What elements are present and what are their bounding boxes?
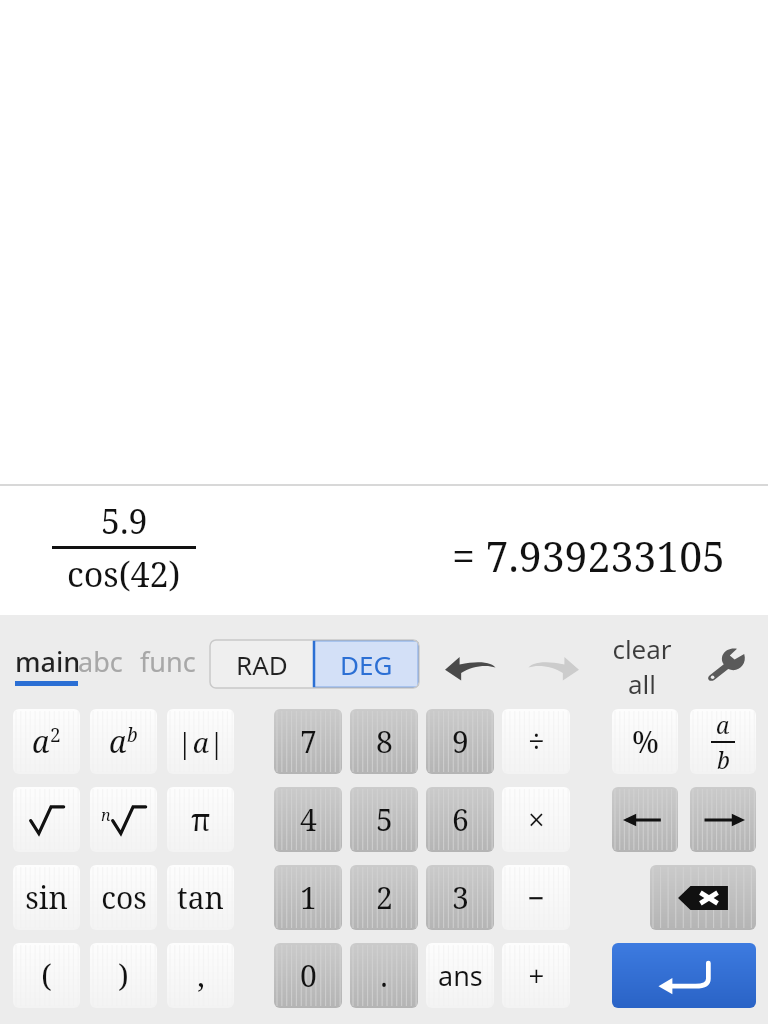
staticText: 5 <box>376 799 393 840</box>
staticText: % <box>632 721 659 762</box>
staticText: |a| <box>177 723 225 761</box>
staticText: = 7.939233105 <box>452 528 726 584</box>
button[interactable]: % <box>612 709 678 774</box>
button[interactable]: π <box>167 787 234 852</box>
button[interactable]: 5 <box>350 787 418 852</box>
staticText: a <box>109 721 127 762</box>
button[interactable]: tan <box>167 865 234 930</box>
button[interactable]: . <box>350 943 418 1008</box>
button[interactable] <box>13 787 80 852</box>
button[interactable]: 3 <box>426 865 494 930</box>
button[interactable]: , <box>167 943 234 1008</box>
staticText: DEG <box>340 647 393 682</box>
staticText: main <box>15 643 81 680</box>
button[interactable]: clear all <box>596 631 688 697</box>
staticText: , <box>197 955 205 996</box>
button[interactable]: 0 <box>274 943 342 1008</box>
staticText: tan <box>177 877 224 918</box>
button[interactable]: DEG <box>314 640 419 688</box>
staticText: n <box>101 804 111 826</box>
staticText: RAD <box>236 647 288 682</box>
button[interactable]: sin <box>13 865 80 930</box>
staticText: cos <box>101 877 147 918</box>
button[interactable]: + <box>502 943 570 1008</box>
staticText: sin <box>25 877 68 918</box>
button[interactable]: 2 <box>350 865 418 930</box>
staticText: 8 <box>376 721 393 762</box>
button[interactable]: × <box>502 787 570 852</box>
staticText: . <box>380 955 388 996</box>
button[interactable]: |a| <box>167 709 234 774</box>
staticText: 6 <box>452 799 469 840</box>
staticText: ) <box>118 955 129 996</box>
button[interactable]: 4 <box>274 787 342 852</box>
button[interactable]: main <box>15 643 81 680</box>
staticText: ans <box>438 957 483 994</box>
staticText: func <box>140 643 196 680</box>
button[interactable]: RAD <box>210 640 314 688</box>
staticText: − <box>527 877 545 918</box>
button[interactable]: Undo <box>438 645 502 685</box>
staticText: + <box>528 955 545 996</box>
staticText: ÷ <box>528 721 545 762</box>
staticText: π <box>191 799 211 840</box>
button[interactable]: Enter <box>612 943 756 1008</box>
button[interactable]: 7 <box>274 709 342 774</box>
staticText: b <box>717 744 730 774</box>
button[interactable]: a <box>13 709 80 774</box>
button[interactable]: ÷ <box>502 709 570 774</box>
staticText: a <box>32 721 50 762</box>
button[interactable]: 9 <box>426 709 494 774</box>
button[interactable]: Settings <box>700 643 750 687</box>
button[interactable]: ans <box>426 943 494 1008</box>
button[interactable]: n <box>90 787 157 852</box>
button[interactable]: Move right <box>690 787 756 852</box>
staticText: ( <box>41 955 52 996</box>
button[interactable]: a <box>90 709 157 774</box>
button[interactable]: abc <box>78 643 123 680</box>
staticText: 1 <box>300 877 317 918</box>
staticText: 2 <box>50 722 61 748</box>
button[interactable]: 8 <box>350 709 418 774</box>
button[interactable]: ) <box>90 943 157 1008</box>
staticText: 0 <box>300 955 317 996</box>
button[interactable]: − <box>502 865 570 930</box>
button[interactable]: 1 <box>274 865 342 930</box>
staticText: clear all <box>612 631 672 697</box>
staticText: 5.9 <box>101 498 148 544</box>
button[interactable]: 6 <box>426 787 494 852</box>
button[interactable]: a <box>690 709 756 774</box>
staticText: × <box>528 799 545 840</box>
staticText: 3 <box>452 877 469 918</box>
staticText: a <box>716 709 730 740</box>
staticText: 4 <box>300 799 317 840</box>
staticText: 9 <box>452 721 469 762</box>
button[interactable]: Backspace <box>650 865 756 930</box>
staticText: 2 <box>376 877 393 918</box>
button[interactable]: ( <box>13 943 80 1008</box>
staticText: 7 <box>300 721 317 762</box>
button[interactable]: cos <box>90 865 157 930</box>
button[interactable]: func <box>140 643 196 680</box>
staticText: b <box>127 722 138 748</box>
button[interactable]: Redo <box>522 645 586 685</box>
button[interactable]: Move left <box>612 787 678 852</box>
staticText: cos(42) <box>67 551 181 597</box>
staticText: abc <box>78 643 123 680</box>
